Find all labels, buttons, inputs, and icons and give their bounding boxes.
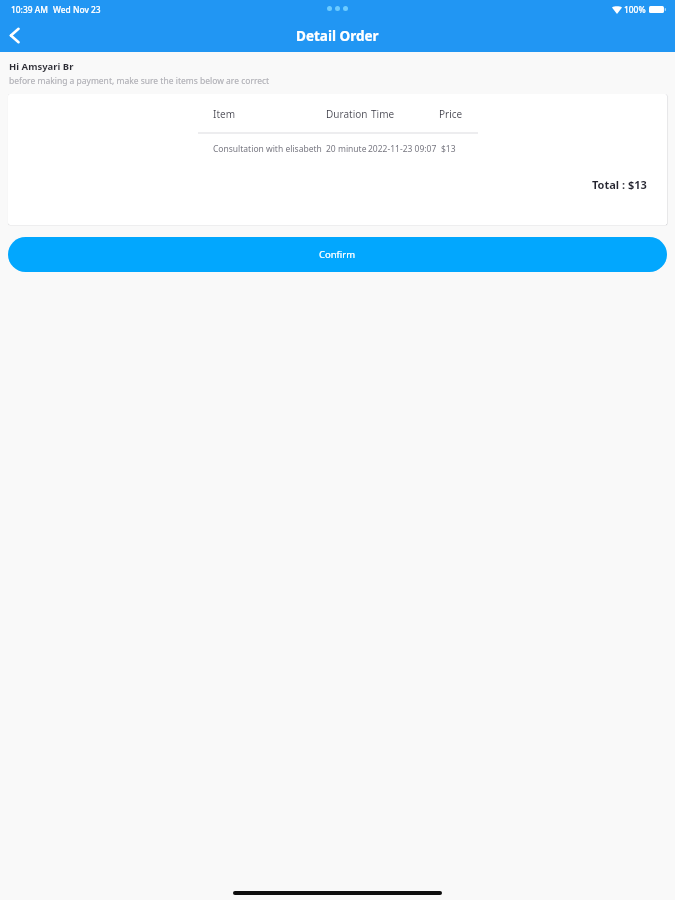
staticText: 10:39 AM xyxy=(11,4,48,15)
staticText: Total : $13 xyxy=(592,177,647,192)
staticText: 20 minute xyxy=(326,143,368,155)
button[interactable]: Confirm xyxy=(8,237,667,272)
staticText: 100% xyxy=(624,4,646,15)
staticText: Duration xyxy=(326,107,371,121)
button[interactable]: Consultation with elisabeth xyxy=(198,143,478,155)
staticText: $13 xyxy=(441,143,456,155)
staticText: 2022-11-23 09:07 xyxy=(368,143,441,155)
staticText: Detail Order xyxy=(296,27,379,45)
staticText: Item xyxy=(213,107,326,121)
staticText: Wed Nov 23 xyxy=(53,4,101,15)
staticText: Price xyxy=(439,107,463,121)
button[interactable]: Back xyxy=(0,21,29,50)
staticText: Confirm xyxy=(319,248,356,261)
staticText: before making a payment, make sure the i… xyxy=(9,75,270,87)
staticText: Time xyxy=(371,107,439,121)
staticText: Hi Amsyari Br xyxy=(9,60,74,73)
staticText: Consultation with elisabeth xyxy=(213,143,326,155)
